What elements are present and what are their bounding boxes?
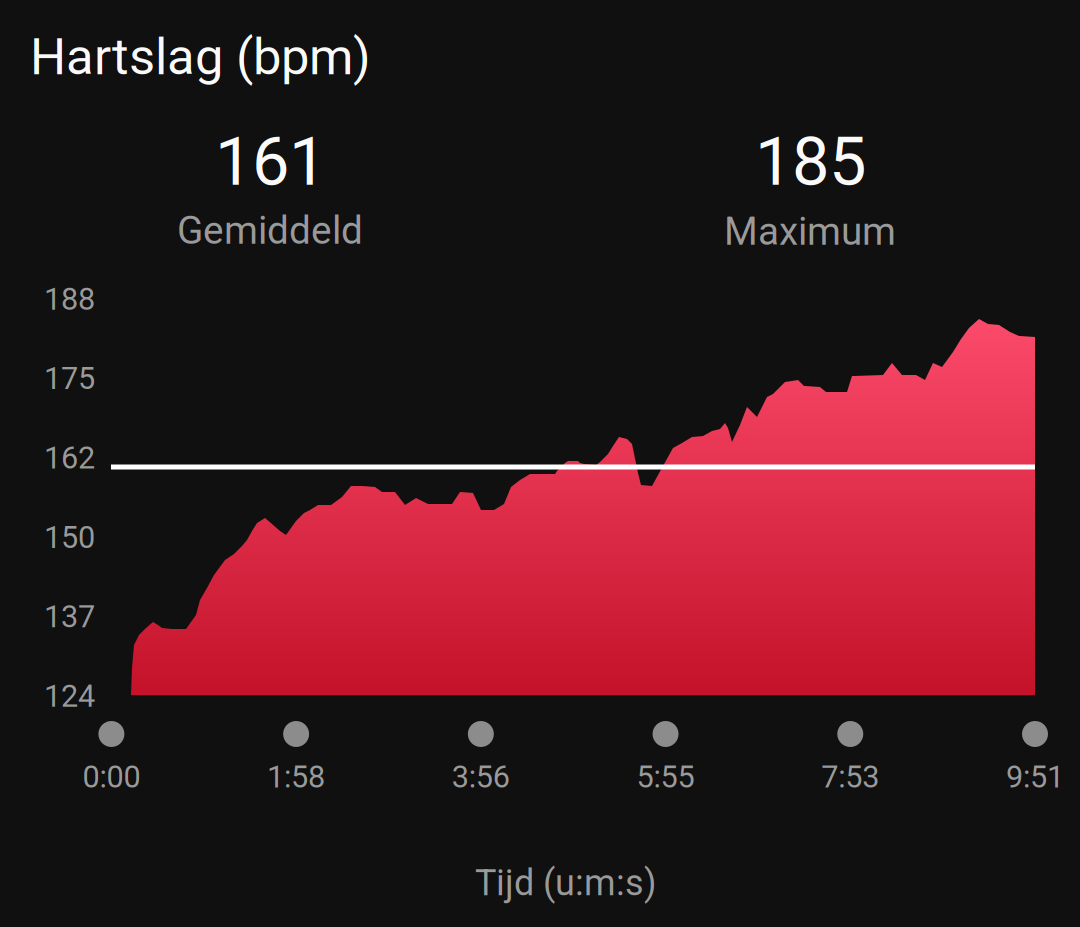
staticText: 124 (44, 678, 95, 714)
staticText: 5:55 (637, 759, 695, 795)
staticText: 0:00 (82, 759, 140, 795)
staticText: Gemiddeld (177, 208, 363, 253)
staticText: Tijd (u:m:s) (475, 862, 657, 904)
staticText: 3:56 (452, 759, 510, 795)
staticText: 150 (44, 519, 95, 555)
staticText: 161 (215, 123, 326, 201)
staticText: 185 (755, 123, 866, 201)
staticText: Hartslag (bpm) (30, 27, 371, 87)
staticText: 175 (44, 361, 95, 396)
staticText: 162 (44, 440, 95, 476)
staticText: Maximum (724, 209, 896, 254)
staticText: 9:51 (1006, 759, 1064, 795)
staticText: 7:53 (821, 759, 879, 795)
staticText: 188 (44, 281, 95, 317)
staticText: 1:58 (267, 759, 325, 795)
staticText: 137 (44, 599, 95, 635)
button[interactable]: Hartslag grafiek, gemiddeld 161, maximum… (131, 298, 1035, 695)
